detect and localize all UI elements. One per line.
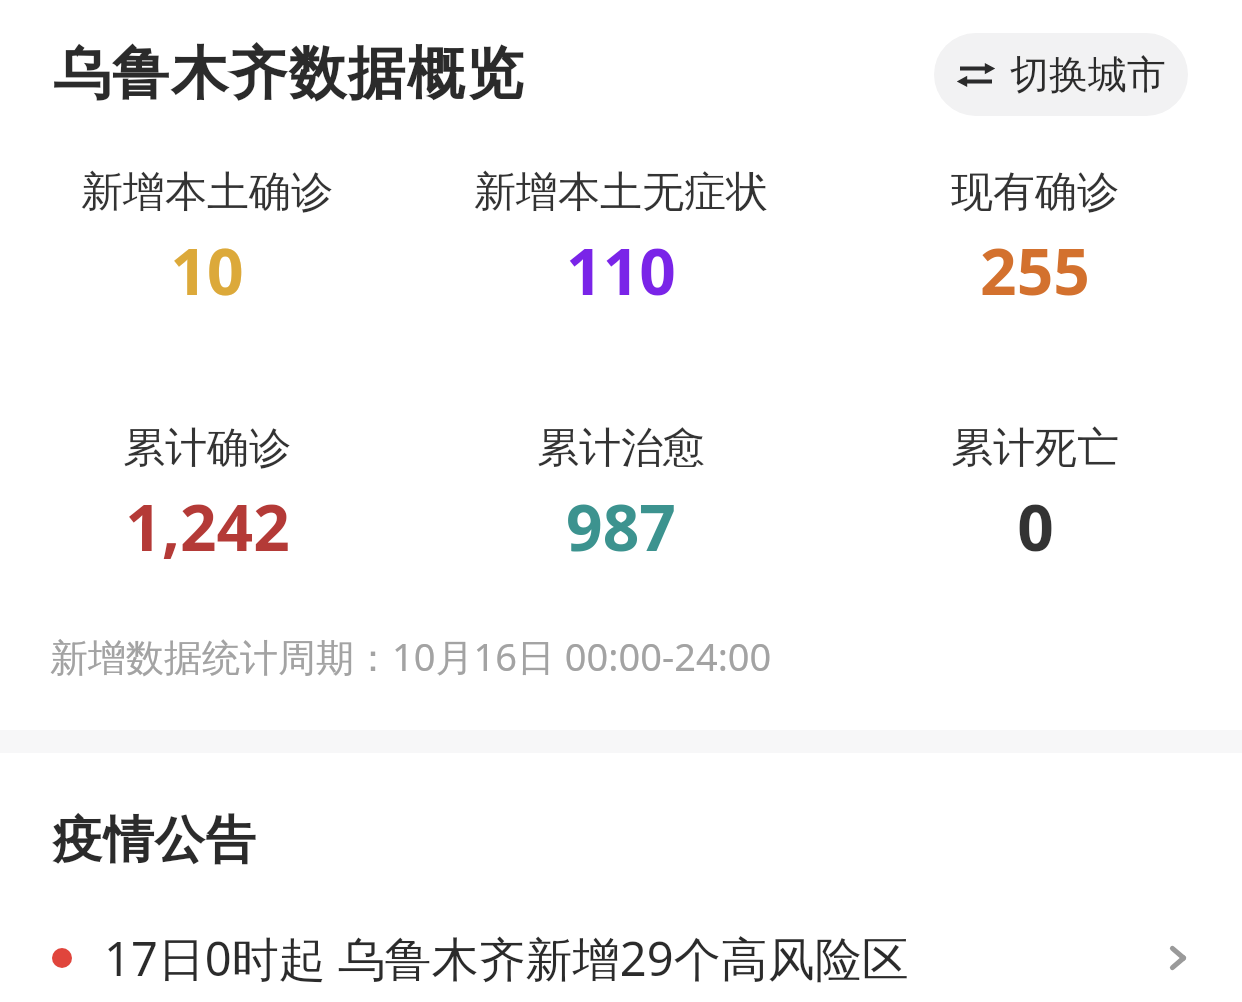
- staticText: 0: [1017, 483, 1054, 570]
- staticText: 疫情公告: [52, 809, 256, 872]
- staticText: 1,242: [125, 483, 290, 570]
- button[interactable]: 17日0时起 乌鲁木齐新增29个高风险区: [0, 916, 1242, 1000]
- staticText: 乌鲁木齐数据概览: [52, 38, 524, 110]
- staticText: 987: [566, 483, 676, 570]
- staticText: 255: [980, 227, 1090, 314]
- staticText: 累计治愈: [537, 422, 705, 475]
- staticText: 110: [566, 227, 676, 314]
- staticText: 17日0时起 乌鲁木齐新增29个高风险区: [104, 926, 1158, 990]
- staticText: 新增本土无症状: [474, 166, 768, 219]
- staticText: 累计死亡: [951, 422, 1119, 475]
- other: Open announcement: [1158, 938, 1198, 978]
- staticText: 新增数据统计周期：10月16日 00:00-24:00: [50, 630, 772, 682]
- other: Switch city: [956, 55, 996, 95]
- staticText: 累计确诊: [123, 422, 291, 475]
- staticText: 10: [170, 227, 244, 314]
- staticText: 新增本土确诊: [81, 166, 333, 219]
- staticText: 现有确诊: [951, 166, 1119, 219]
- staticText: 切换城市: [1010, 50, 1166, 99]
- button[interactable]: Switch city: [934, 33, 1188, 116]
